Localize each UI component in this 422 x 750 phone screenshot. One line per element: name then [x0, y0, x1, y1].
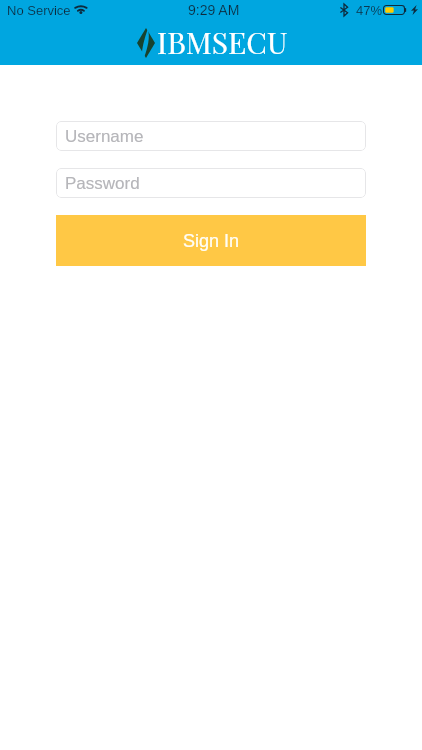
staticText: IBMSECU [157, 22, 288, 62]
staticText: Password [65, 174, 140, 193]
button[interactable]: Password [56, 168, 366, 198]
button[interactable]: Sign In [56, 215, 366, 266]
staticText: Username [65, 127, 144, 146]
staticText: No Service [7, 3, 71, 18]
staticText: 9:29 AM [188, 2, 240, 18]
staticText: Sign In [183, 231, 240, 251]
button[interactable]: Username [56, 121, 366, 151]
staticText: 47% [356, 3, 383, 18]
